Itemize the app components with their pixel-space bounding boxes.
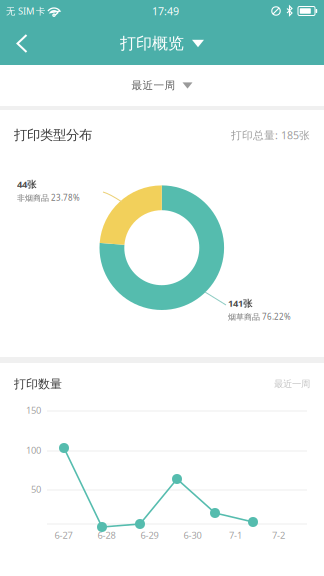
staticText: 7-2 [272, 529, 285, 541]
button[interactable]: 打印概览 [112, 28, 212, 59]
staticText: 6-27 [54, 529, 72, 541]
staticText: 6-30 [183, 529, 201, 541]
staticText: 打印总量: 185张 [231, 128, 310, 142]
staticText: 6-29 [140, 529, 158, 541]
staticText: 最近一周 [131, 79, 175, 92]
staticText: 打印数量 [14, 377, 62, 391]
staticText: 17:49 [152, 4, 179, 18]
staticText: 打印概览 [120, 34, 184, 53]
staticText: 50 [31, 483, 41, 495]
button[interactable]: 返回 [0, 22, 44, 65]
staticText: 141张 [228, 297, 252, 309]
staticText: 无 SIM 卡 [6, 5, 45, 17]
staticText: 非烟商品 23.78% [17, 192, 80, 203]
staticText: 6-28 [97, 529, 115, 541]
staticText: 打印类型分布 [14, 127, 92, 143]
staticText: 100 [26, 444, 41, 456]
staticText: 最近一周 [274, 378, 310, 390]
staticText: 烟草商品 76.22% [228, 311, 291, 322]
staticText: 7-1 [229, 529, 242, 541]
staticText: 150 [26, 404, 41, 416]
staticText: 44张 [17, 178, 36, 190]
button[interactable]: 最近一周 [119, 70, 204, 101]
